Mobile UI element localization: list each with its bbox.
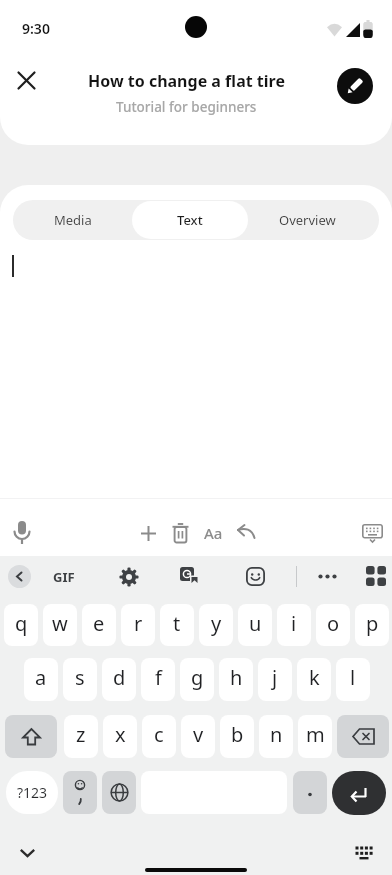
staticText: v	[193, 721, 204, 748]
button[interactable]: Media	[13, 200, 132, 240]
button[interactable]	[116, 564, 141, 589]
staticText: y	[211, 610, 222, 637]
button[interactable]	[11, 519, 33, 547]
button[interactable]	[363, 563, 389, 589]
button[interactable]: l	[336, 658, 370, 701]
button[interactable]: p	[355, 604, 389, 646]
button[interactable]	[293, 771, 327, 814]
button[interactable]: h	[219, 658, 253, 701]
button[interactable]: Overview	[248, 200, 366, 240]
button[interactable]: s	[63, 658, 97, 701]
button[interactable]: u	[238, 604, 272, 646]
staticText: u	[249, 610, 262, 637]
staticText: Media	[54, 211, 92, 229]
staticText: m	[306, 721, 325, 748]
button[interactable]: f	[141, 658, 175, 701]
staticText: Tutorial for beginners	[116, 98, 257, 116]
staticText: b	[231, 721, 244, 748]
button[interactable]	[360, 521, 385, 545]
staticText: w	[52, 610, 68, 637]
staticText: n	[270, 721, 283, 748]
staticText: a	[35, 664, 47, 691]
button[interactable]: v	[181, 715, 215, 758]
button[interactable]	[350, 841, 378, 865]
staticText: e	[93, 610, 105, 637]
button[interactable]: x	[103, 715, 137, 758]
button[interactable]: d	[102, 658, 136, 701]
button[interactable]	[138, 523, 158, 543]
button[interactable]: j	[258, 658, 292, 701]
button[interactable]	[8, 565, 31, 588]
button[interactable]: e	[82, 604, 116, 646]
staticText: Overview	[279, 211, 336, 229]
staticText: z	[76, 721, 86, 748]
button[interactable]	[234, 521, 258, 543]
staticText: c	[154, 721, 164, 748]
staticText: j	[272, 664, 278, 691]
button[interactable]	[243, 564, 268, 589]
button[interactable]: k	[297, 658, 331, 701]
button[interactable]: c	[142, 715, 176, 758]
button[interactable]: Aa	[200, 520, 226, 546]
staticText: x	[115, 721, 126, 748]
staticText: t	[173, 610, 181, 637]
button[interactable]	[5, 715, 57, 758]
button[interactable]: z	[64, 715, 98, 758]
staticText: p	[366, 610, 379, 637]
button[interactable]	[63, 771, 97, 814]
button[interactable]: m	[298, 715, 332, 758]
button[interactable]: r	[121, 604, 155, 646]
button[interactable]: i	[277, 604, 311, 646]
button[interactable]: a	[24, 658, 58, 701]
button[interactable]	[177, 564, 202, 589]
button[interactable]: q	[4, 604, 38, 646]
button[interactable]: t	[160, 604, 194, 646]
staticText: o	[327, 610, 340, 637]
button[interactable]	[332, 771, 386, 815]
button[interactable]: GIF	[48, 564, 80, 589]
staticText: Aa	[204, 523, 223, 543]
button[interactable]: ?123	[6, 771, 58, 814]
staticText: f	[155, 664, 162, 691]
staticText: h	[230, 664, 243, 691]
staticText: s	[75, 664, 85, 691]
button[interactable]: o	[316, 604, 350, 646]
button[interactable]	[315, 566, 340, 587]
button[interactable]	[337, 715, 389, 758]
button[interactable]	[102, 771, 136, 814]
button[interactable]: b	[220, 715, 254, 758]
staticText: g	[191, 664, 204, 691]
button[interactable]: y	[199, 604, 233, 646]
staticText: l	[350, 664, 356, 691]
staticText: q	[15, 610, 28, 637]
button[interactable]: w	[43, 604, 77, 646]
staticText: How to change a flat tire	[88, 70, 285, 92]
staticText: i	[291, 610, 297, 637]
button[interactable]	[9, 63, 43, 97]
staticText: Text	[177, 211, 203, 229]
button[interactable]	[337, 68, 373, 104]
staticText: ?123	[17, 783, 48, 802]
button[interactable]: g	[180, 658, 214, 701]
staticText: k	[309, 664, 320, 691]
staticText: d	[113, 664, 126, 691]
staticText: GIF	[53, 568, 75, 586]
staticText: 9:30	[22, 19, 50, 38]
staticText: r	[134, 610, 143, 637]
button[interactable]: n	[259, 715, 293, 758]
button[interactable]	[170, 521, 191, 545]
button[interactable]: Text	[132, 201, 248, 239]
button[interactable]	[12, 842, 42, 864]
